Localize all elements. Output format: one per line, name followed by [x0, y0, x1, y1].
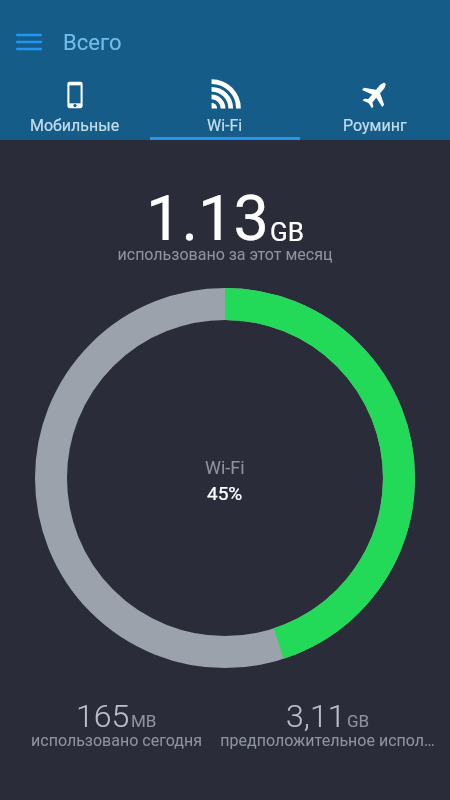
staticText: 1.13	[146, 182, 269, 256]
staticText: 165	[76, 697, 130, 735]
staticText: GB	[347, 711, 370, 731]
button[interactable]: Роуминг	[300, 72, 450, 140]
button[interactable]: Menu	[8, 22, 49, 61]
staticText: 45%	[207, 482, 243, 504]
staticText: GB	[270, 217, 304, 247]
staticText: использовано за этот месяц	[0, 245, 450, 264]
staticText: Wi-Fi	[207, 116, 243, 135]
button[interactable]: Wi-Fi	[150, 72, 300, 140]
staticText: 3,11	[286, 697, 346, 735]
staticText: Роуминг	[343, 116, 407, 135]
staticText: Всего	[63, 30, 122, 56]
staticText: предположительное испол…	[220, 731, 435, 750]
staticText: Wi-Fi	[205, 457, 245, 478]
staticText: использовано сегодня	[31, 731, 202, 750]
staticText: Мобильные	[30, 116, 120, 135]
staticText: MB	[131, 711, 157, 731]
button[interactable]: Мобильные	[0, 72, 150, 140]
